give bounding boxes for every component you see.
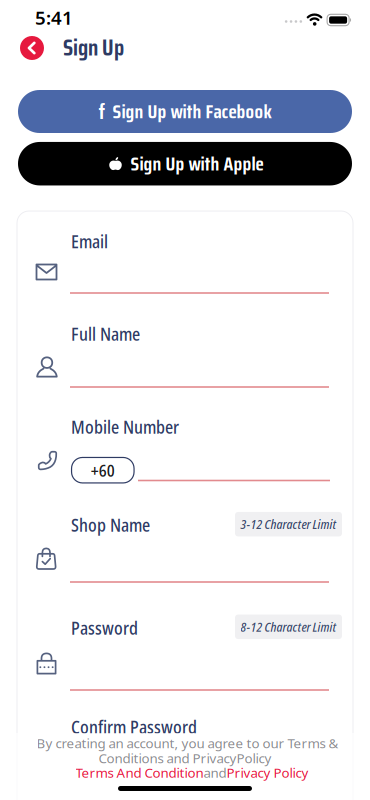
staticText: 8-12 Character Limit (240, 618, 336, 635)
button[interactable]: Back (16, 32, 48, 64)
staticText: By creating an account, you agree to our… (36, 734, 338, 752)
staticText: Mobile Number (71, 415, 179, 439)
button[interactable]: Privacy Policy (226, 764, 308, 781)
staticText: Shop Name (71, 513, 150, 537)
staticText: Full Name (71, 322, 140, 346)
button[interactable]: Sign Up with Apple (18, 142, 352, 185)
staticText: Password (71, 616, 138, 640)
staticText: Conditions and PrivacyPolicy (98, 749, 271, 767)
staticText: Confirm Password (71, 715, 197, 739)
staticText: +60 (91, 459, 115, 481)
staticText: 5:41 (35, 5, 73, 30)
staticText: Sign Up (63, 30, 124, 65)
staticText: Email (71, 230, 108, 253)
staticText: and (203, 764, 226, 781)
button[interactable]: Country code +60 (71, 457, 134, 483)
staticText: 3-12 Character Limit (240, 516, 336, 533)
staticText: f (98, 95, 105, 128)
staticText: Privacy Policy (226, 764, 308, 781)
staticText: Terms And Condition (75, 764, 203, 781)
staticText: Sign Up with Facebook (112, 96, 271, 127)
button[interactable]: f (18, 90, 352, 133)
staticText: Sign Up with Apple (130, 148, 263, 179)
button[interactable]: Terms And Condition (75, 764, 203, 781)
